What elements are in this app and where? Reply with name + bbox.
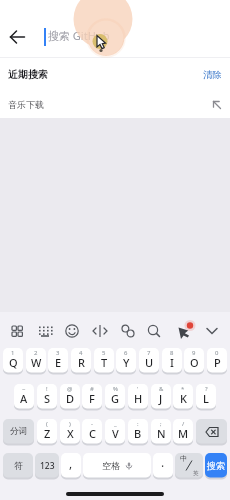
button[interactable] xyxy=(115,316,141,342)
button[interactable] xyxy=(168,316,194,342)
button[interactable]: 符 xyxy=(3,453,33,478)
button[interactable]: 123 xyxy=(35,453,59,478)
staticText: ~ xyxy=(22,385,26,393)
button[interactable]: % xyxy=(105,384,125,409)
staticText: T xyxy=(101,355,108,370)
button[interactable] xyxy=(87,316,113,342)
button[interactable]: 中 xyxy=(175,453,203,478)
staticText: W xyxy=(31,355,42,370)
staticText: G xyxy=(111,391,119,406)
staticText: ' xyxy=(137,385,139,393)
button[interactable]: & xyxy=(151,384,171,409)
button[interactable]: 1 xyxy=(3,348,23,373)
staticText: E xyxy=(55,355,62,370)
button[interactable]: 空格 xyxy=(83,453,151,478)
staticText: 4 xyxy=(79,349,83,357)
button[interactable]: : xyxy=(128,419,148,444)
staticText: 符 xyxy=(14,460,23,471)
staticText: R xyxy=(78,355,85,370)
button[interactable]: 2 xyxy=(26,348,46,373)
staticText: 空格 xyxy=(102,460,120,471)
staticText: 3 xyxy=(56,349,60,357)
staticText: , xyxy=(69,455,73,471)
button[interactable] xyxy=(199,316,225,342)
staticText: B xyxy=(134,426,142,441)
staticText: ( xyxy=(46,420,48,428)
staticText: I xyxy=(170,355,174,370)
staticText: 近期搜索 xyxy=(8,68,48,81)
staticText: P xyxy=(214,355,221,370)
button[interactable]: 清除 xyxy=(203,69,222,81)
staticText: 分词 xyxy=(10,426,27,437)
staticText: ! xyxy=(46,385,48,393)
staticText: A xyxy=(20,391,28,406)
staticText: 5 xyxy=(102,349,106,357)
staticText: Z xyxy=(44,426,51,441)
button[interactable]: # xyxy=(82,384,102,409)
staticText: 1 xyxy=(11,349,15,357)
button[interactable] xyxy=(141,316,167,342)
button[interactable]: 7 xyxy=(139,348,159,373)
button[interactable]: 分词 xyxy=(3,419,34,444)
button[interactable]: _ xyxy=(105,419,125,444)
staticText: Q xyxy=(9,355,18,370)
staticText: 搜索 xyxy=(207,460,225,471)
staticText: F xyxy=(89,391,95,406)
staticText: 7 xyxy=(147,349,151,357)
button[interactable]: 0 xyxy=(207,348,227,373)
button[interactable]: / xyxy=(173,419,193,444)
button[interactable]: 9 xyxy=(184,348,204,373)
staticText: O xyxy=(190,355,199,370)
staticText: ? xyxy=(205,385,208,393)
staticText: X xyxy=(67,426,74,441)
button[interactable]: 搜索 xyxy=(205,453,227,478)
button[interactable]: ( xyxy=(37,419,57,444)
staticText: C xyxy=(89,426,96,441)
staticText: ) xyxy=(69,420,71,428)
button[interactable]: . xyxy=(153,453,173,478)
button[interactable]: ! xyxy=(37,384,57,409)
staticText: / xyxy=(182,420,185,428)
staticText: 2 xyxy=(34,349,38,357)
staticText: H xyxy=(134,391,143,406)
staticText: 123 xyxy=(40,460,55,472)
staticText: # xyxy=(90,385,94,393)
button[interactable] xyxy=(196,419,227,444)
staticText: 6 xyxy=(124,349,128,357)
button[interactable]: 4 xyxy=(71,348,91,373)
staticText: 英 xyxy=(193,470,199,477)
button[interactable]: ' xyxy=(128,384,148,409)
button[interactable] xyxy=(32,316,58,342)
staticText: J xyxy=(159,391,163,406)
staticText: 音乐下载 xyxy=(8,99,44,110)
staticText: 0 xyxy=(215,349,219,357)
button[interactable]: ~ xyxy=(14,384,34,409)
staticText: 中 xyxy=(180,454,187,463)
button[interactable]: - xyxy=(82,419,102,444)
button[interactable]: 音乐下载 xyxy=(8,91,222,118)
staticText: @ xyxy=(67,385,73,393)
button[interactable]: 6 xyxy=(116,348,136,373)
button[interactable]: * xyxy=(173,384,193,409)
staticText: L xyxy=(203,391,209,406)
button[interactable]: 8 xyxy=(162,348,182,373)
staticText: 清除 xyxy=(203,69,222,81)
button[interactable]: @ xyxy=(60,384,80,409)
staticText: S xyxy=(44,391,51,406)
button[interactable] xyxy=(4,316,30,342)
button[interactable]: 3 xyxy=(48,348,68,373)
staticText: U xyxy=(145,355,154,370)
button[interactable]: , xyxy=(61,453,81,478)
staticText: 8 xyxy=(170,349,174,357)
staticText: M xyxy=(178,426,189,441)
button[interactable] xyxy=(6,25,30,49)
button[interactable]: ; xyxy=(151,419,171,444)
button[interactable] xyxy=(38,9,226,49)
button[interactable]: 5 xyxy=(94,348,114,373)
button[interactable]: ) xyxy=(60,419,80,444)
button[interactable]: ? xyxy=(196,384,216,409)
staticText: 9 xyxy=(192,349,196,357)
staticText: * xyxy=(181,385,185,393)
staticText: D xyxy=(66,391,75,406)
button[interactable] xyxy=(59,316,85,342)
